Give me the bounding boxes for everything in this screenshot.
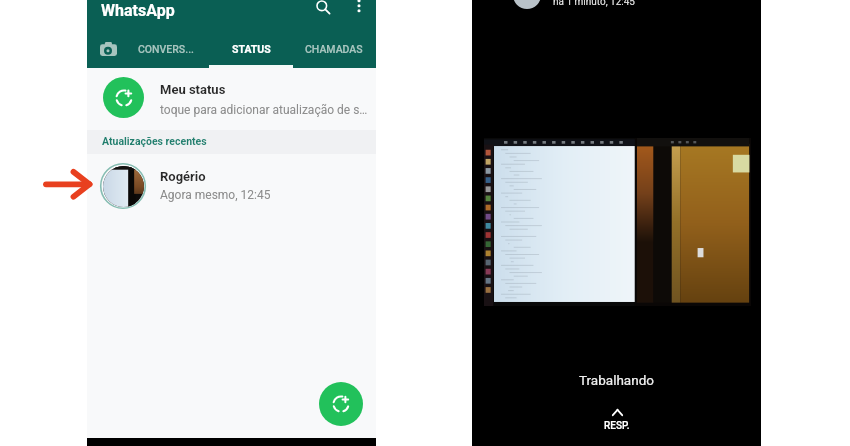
button[interactable]: CHAMADAS: [298, 32, 370, 66]
staticText: CONVERS...: [138, 43, 194, 55]
staticText: RESP.: [604, 420, 630, 432]
staticText: Trabalhando: [579, 372, 654, 388]
staticText: STATUS: [232, 43, 271, 55]
staticText: CHAMADAS: [305, 43, 363, 55]
button[interactable]: Meu status: [87, 68, 376, 130]
staticText: Rogério: [160, 169, 206, 184]
staticText: Atualizações recentes: [102, 135, 207, 147]
staticText: Agora mesmo, 12:45: [160, 188, 271, 202]
button[interactable]: STATUS: [215, 32, 287, 66]
button[interactable]: Search: [310, 0, 336, 20]
staticText: toque para adicionar atualização de s…: [160, 103, 368, 117]
staticText: há 1 minuto, 12:45: [553, 0, 635, 8]
staticText: WhatsApp: [101, 1, 175, 20]
button[interactable]: Camera: [93, 32, 123, 66]
button[interactable]: CONVERS...: [130, 32, 202, 66]
button[interactable]: Rogério: [87, 154, 376, 214]
button[interactable]: New status update: [319, 382, 363, 426]
staticText: Meu status: [160, 82, 226, 97]
button[interactable]: RESP.: [587, 409, 647, 441]
button[interactable]: More options: [349, 0, 369, 15]
